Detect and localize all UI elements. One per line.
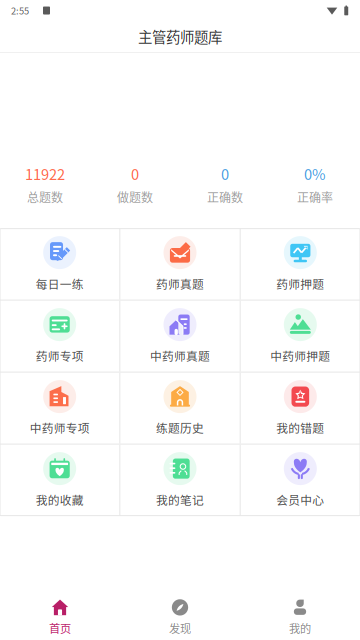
staticText: 会员中心: [276, 491, 324, 508]
staticText: 0%: [304, 163, 326, 184]
staticText: 首页: [49, 620, 71, 636]
button[interactable]: 发现: [120, 599, 240, 636]
staticText: 总题数: [27, 188, 63, 206]
button[interactable]: 会员中心: [241, 445, 360, 516]
button[interactable]: 我的笔记: [120, 445, 240, 516]
staticText: 11922: [25, 163, 65, 184]
button[interactable]: 药师真题: [120, 229, 240, 300]
staticText: 药师真题: [156, 275, 204, 292]
staticText: 药师专项: [36, 347, 84, 364]
button[interactable]: 药师专项: [0, 301, 119, 372]
staticText: 我的错题: [276, 419, 324, 436]
staticText: 练题历史: [156, 419, 204, 436]
staticText: 中药师专项: [30, 419, 90, 436]
staticText: 药师押题: [276, 275, 324, 292]
button[interactable]: 练题历史: [120, 373, 240, 444]
staticText: 主管药师题库: [138, 26, 222, 47]
button[interactable]: 我的收藏: [0, 445, 119, 516]
button[interactable]: 中药师专项: [0, 373, 119, 444]
button[interactable]: 中药师押题: [241, 301, 360, 372]
staticText: 我的: [289, 620, 311, 636]
staticText: 发现: [169, 620, 191, 636]
staticText: 正确率: [297, 188, 333, 206]
staticText: 正确数: [207, 188, 243, 206]
button[interactable]: 药师押题: [241, 229, 360, 300]
button[interactable]: 我的错题: [241, 373, 360, 444]
button[interactable]: 中药师真题: [120, 301, 240, 372]
staticText: 每日一练: [36, 275, 84, 292]
staticText: 我的笔记: [156, 491, 204, 508]
button[interactable]: 我的: [240, 599, 360, 636]
staticText: 做题数: [117, 188, 153, 206]
button[interactable]: 首页: [0, 599, 120, 636]
staticText: 中药师真题: [150, 347, 210, 364]
staticText: 我的收藏: [36, 491, 84, 508]
button[interactable]: 每日一练: [0, 229, 119, 300]
staticText: 0: [131, 163, 139, 184]
staticText: 中药师押题: [270, 347, 330, 364]
staticText: 2:55: [11, 4, 29, 17]
staticText: 0: [221, 163, 229, 184]
